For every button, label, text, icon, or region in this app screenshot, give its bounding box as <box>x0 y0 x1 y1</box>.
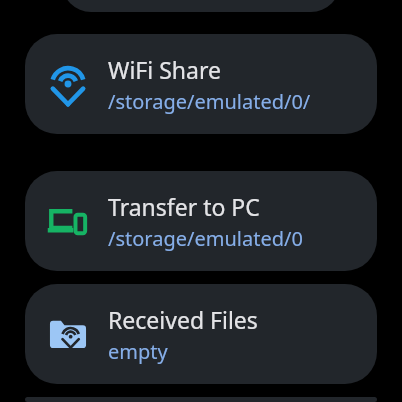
button[interactable]: WiFi Share <box>25 34 377 134</box>
other: Received Files <box>46 312 90 356</box>
staticText: WiFi Share <box>108 54 221 85</box>
button[interactable]: Transfer to PC <box>25 171 377 271</box>
staticText: /storage/emulated/0 <box>108 225 303 252</box>
other: WiFi Share <box>46 62 90 106</box>
other: Transfer to PC <box>46 199 90 243</box>
staticText: Received Files <box>108 304 258 335</box>
button[interactable]: Received Files <box>25 284 377 384</box>
staticText: /storage/emulated/0/ <box>108 88 311 115</box>
staticText: Transfer to PC <box>108 191 260 222</box>
button[interactable] <box>62 0 340 12</box>
staticText: empty <box>108 338 168 365</box>
